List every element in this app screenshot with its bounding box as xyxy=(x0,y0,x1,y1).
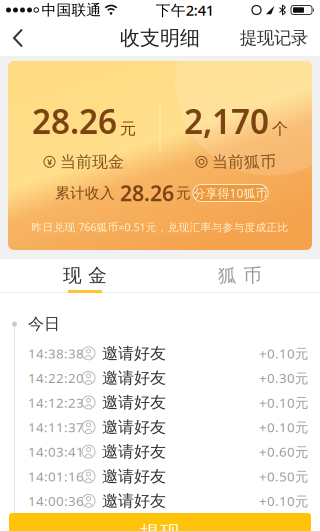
staticText: 14:03:41 xyxy=(28,443,84,460)
staticText: 14:00:36 xyxy=(28,492,84,510)
button[interactable]: 14:03:41 xyxy=(0,439,320,464)
staticText: 邀请好友 xyxy=(102,491,166,511)
staticText: 邀请好友 xyxy=(102,466,166,486)
staticText: 14:38:38 xyxy=(28,344,84,362)
staticText: 提现记录 xyxy=(240,27,308,49)
staticText: 28.26 xyxy=(32,99,117,143)
staticText: 昨日兑现 766狐币=0.51元，兑现汇率与参与度成正比 xyxy=(31,220,288,234)
staticText: 邀请好友 xyxy=(102,393,166,412)
staticText: ¥ xyxy=(47,156,52,168)
staticText: +0.10元 xyxy=(259,394,308,411)
staticText: 14:01:16 xyxy=(28,467,84,485)
staticText: 14:22:20 xyxy=(28,369,84,387)
button[interactable]: 现 金 xyxy=(0,259,160,293)
staticText: 邀请好友 xyxy=(102,368,166,388)
staticText: 邀请好友 xyxy=(102,417,166,437)
button[interactable]: 14:12:23 xyxy=(0,390,320,415)
staticText: 提现 xyxy=(140,521,180,531)
button[interactable]: 提现 xyxy=(9,513,311,531)
staticText: 28.26 xyxy=(120,179,174,207)
staticText: 累计收入 xyxy=(55,184,115,202)
staticText: 个 xyxy=(272,119,288,138)
button[interactable]: 14:11:37 xyxy=(0,415,320,439)
staticText: 邀请好友 xyxy=(102,442,166,462)
staticText: 2,170 xyxy=(184,99,269,143)
staticText: 当前现金 xyxy=(60,152,124,172)
button[interactable]: 14:00:36 xyxy=(0,489,320,513)
staticText: 今日 xyxy=(28,314,60,334)
staticText: 中国联通 xyxy=(41,1,101,19)
staticText: +0.30元 xyxy=(259,369,308,387)
staticText: +0.50元 xyxy=(259,467,308,485)
staticText: 下午2:41 xyxy=(156,0,214,20)
staticText: 14:11:37 xyxy=(28,418,84,436)
staticText: 当前狐币 xyxy=(212,152,276,172)
button[interactable]: 14:22:20 xyxy=(0,366,320,390)
button[interactable]: 14:01:16 xyxy=(0,464,320,489)
staticText: 邀请好友 xyxy=(102,343,166,363)
staticText: +0.10元 xyxy=(259,492,308,510)
staticText: +0.10元 xyxy=(259,344,308,362)
button[interactable]: 提现记录 xyxy=(240,18,320,58)
staticText: +0.60元 xyxy=(259,443,308,460)
button[interactable]: 14:38:38 xyxy=(0,341,320,366)
staticText: 元 xyxy=(176,184,191,202)
button[interactable]: 狐 币 xyxy=(160,259,320,293)
staticText: +0.10元 xyxy=(259,418,308,436)
staticText: 狐 币 xyxy=(218,264,262,287)
button[interactable]: 分享得10狐币 xyxy=(193,184,268,201)
staticText: 元 xyxy=(120,119,136,138)
staticText: 分享得10狐币 xyxy=(193,185,267,201)
button[interactable]: Back xyxy=(0,20,23,55)
staticText: 现 金 xyxy=(63,264,107,287)
staticText: 14:12:23 xyxy=(28,394,84,411)
staticText: 收支明细 xyxy=(120,26,200,50)
